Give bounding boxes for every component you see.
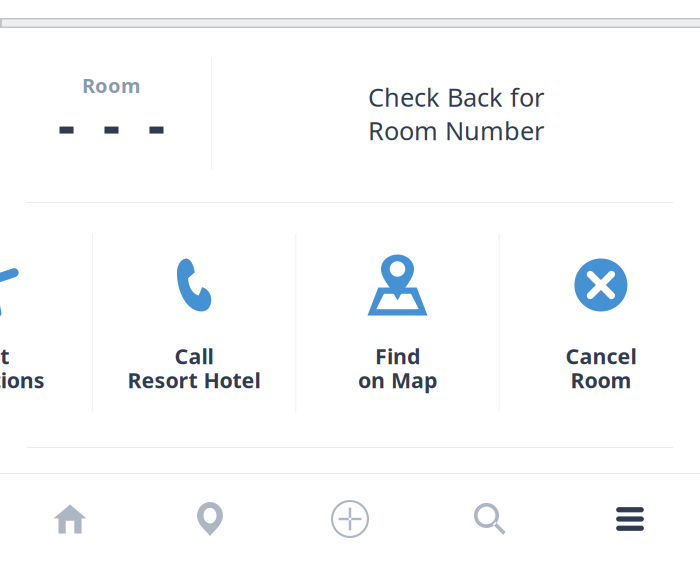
staticText: Get: [0, 342, 9, 370]
button[interactable]: Add: [280, 474, 420, 571]
button[interactable]: Places: [140, 474, 280, 571]
button[interactable]: Home: [0, 474, 140, 571]
button[interactable]: Menu: [560, 474, 700, 571]
staticText: on Map: [358, 366, 437, 394]
button[interactable]: Find: [296, 203, 499, 447]
staticText: Resort Hotel: [128, 366, 261, 394]
button[interactable]: Get: [0, 203, 92, 447]
staticText: Room: [82, 72, 141, 99]
button[interactable]: Search: [420, 474, 560, 571]
staticText: Room: [570, 366, 631, 394]
button[interactable]: Call: [93, 203, 295, 447]
staticText: Find: [375, 342, 420, 370]
staticText: Directions: [0, 366, 45, 394]
staticText: Check Back for Room Number: [368, 80, 544, 147]
button[interactable]: Cancel: [500, 203, 700, 447]
staticText: Cancel: [565, 342, 636, 370]
staticText: Call: [175, 342, 214, 370]
